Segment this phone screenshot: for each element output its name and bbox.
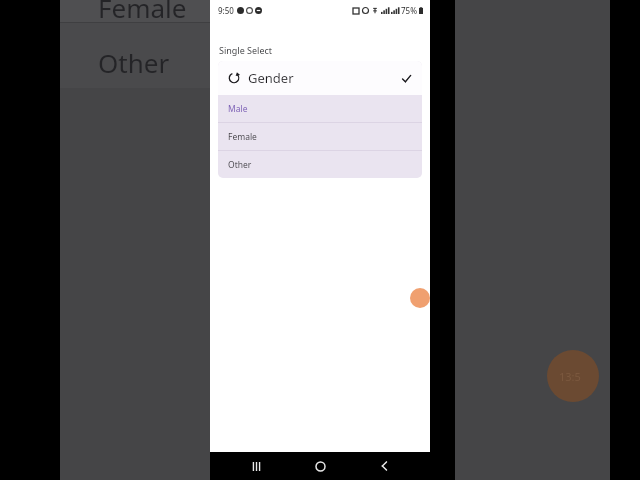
other: Selected xyxy=(401,73,412,84)
button[interactable]: Refresh xyxy=(218,61,422,95)
staticText: Other xyxy=(98,45,170,80)
button[interactable]: Female xyxy=(218,123,422,150)
button[interactable]: Home xyxy=(302,452,338,480)
staticText: Female xyxy=(228,131,257,143)
staticText: Single Select xyxy=(219,44,273,56)
staticText: 75% xyxy=(401,5,417,16)
other: Refresh xyxy=(228,72,240,84)
button[interactable]: Other xyxy=(218,151,422,178)
staticText: Male xyxy=(228,103,248,115)
staticText: Gender xyxy=(248,69,294,87)
staticText: 9:50 xyxy=(218,5,234,16)
button[interactable]: Recent apps xyxy=(238,452,274,480)
button[interactable]: Male xyxy=(218,95,422,122)
staticText: Female xyxy=(98,0,187,25)
button[interactable]: Back xyxy=(366,452,402,480)
staticText: 13:5 xyxy=(559,369,581,384)
staticText: Other xyxy=(228,159,252,171)
